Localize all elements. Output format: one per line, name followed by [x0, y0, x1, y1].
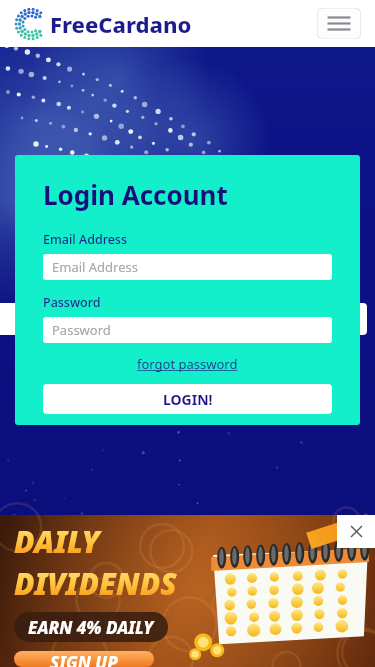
button[interactable]: FreeCardano — [14, 7, 192, 41]
button[interactable]: Password — [43, 317, 332, 343]
staticText: Password — [52, 321, 111, 339]
button[interactable]: forgot password — [137, 355, 238, 373]
staticText: LOGIN! — [163, 390, 213, 409]
button[interactable]: SIGN UP — [14, 651, 154, 667]
staticText: Password — [43, 294, 101, 311]
staticText: EARN 4% DAILY — [28, 616, 154, 639]
staticText: DIVIDENDS — [14, 563, 177, 604]
staticText: Email Address — [52, 258, 138, 276]
staticText: DIVIDENDS — [14, 563, 177, 604]
button[interactable]: LOGIN! — [43, 384, 332, 414]
button[interactable]: Close ad — [337, 515, 375, 548]
staticText: DAILY — [14, 521, 100, 562]
staticText: Email Address — [43, 231, 128, 248]
staticText: SIGN UP — [50, 651, 118, 667]
button[interactable]: Open menu — [317, 8, 361, 39]
staticText: FreeCardano — [50, 9, 192, 39]
button[interactable]: Email Address — [43, 254, 332, 280]
staticText: Login Account — [43, 177, 228, 212]
staticText: DAILY — [14, 521, 100, 562]
